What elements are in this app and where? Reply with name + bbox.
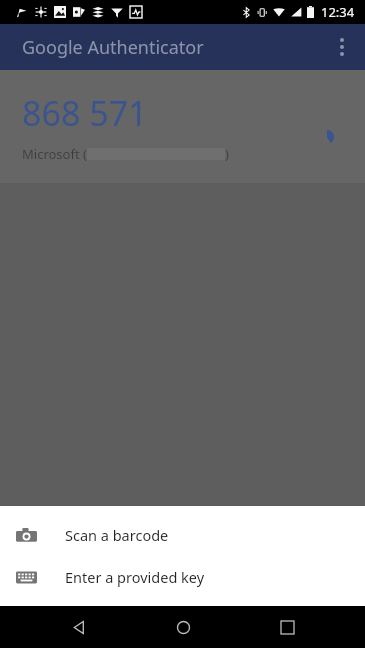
staticText: 868 571: [22, 90, 148, 136]
staticText: Microsoft (: [22, 145, 87, 163]
button[interactable]: 868 571: [0, 70, 365, 183]
button[interactable]: Recent apps: [261, 606, 313, 648]
button[interactable]: More options: [319, 24, 365, 70]
button[interactable]: Home: [157, 606, 209, 648]
staticText: Scan a barcode: [65, 525, 169, 545]
staticText: Google Authenticator: [22, 35, 204, 60]
button[interactable]: Scan a barcode: [0, 514, 365, 556]
button[interactable]: Enter a provided key: [0, 556, 365, 598]
button[interactable]: Back: [52, 606, 104, 648]
staticText: Enter a provided key: [65, 567, 205, 587]
staticText: 12:34: [321, 3, 355, 21]
staticText: ): [225, 145, 229, 163]
